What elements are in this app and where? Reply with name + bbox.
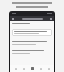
button[interactable] <box>22 18 43 20</box>
button[interactable]: Menu <box>10 16 54 21</box>
button[interactable]: Search <box>21 65 26 72</box>
button[interactable]: Alerts <box>38 65 43 72</box>
button[interactable]: Home <box>13 65 18 72</box>
button[interactable]: Profile <box>46 65 51 72</box>
button[interactable]: Add <box>30 65 35 72</box>
button[interactable] <box>12 29 52 36</box>
